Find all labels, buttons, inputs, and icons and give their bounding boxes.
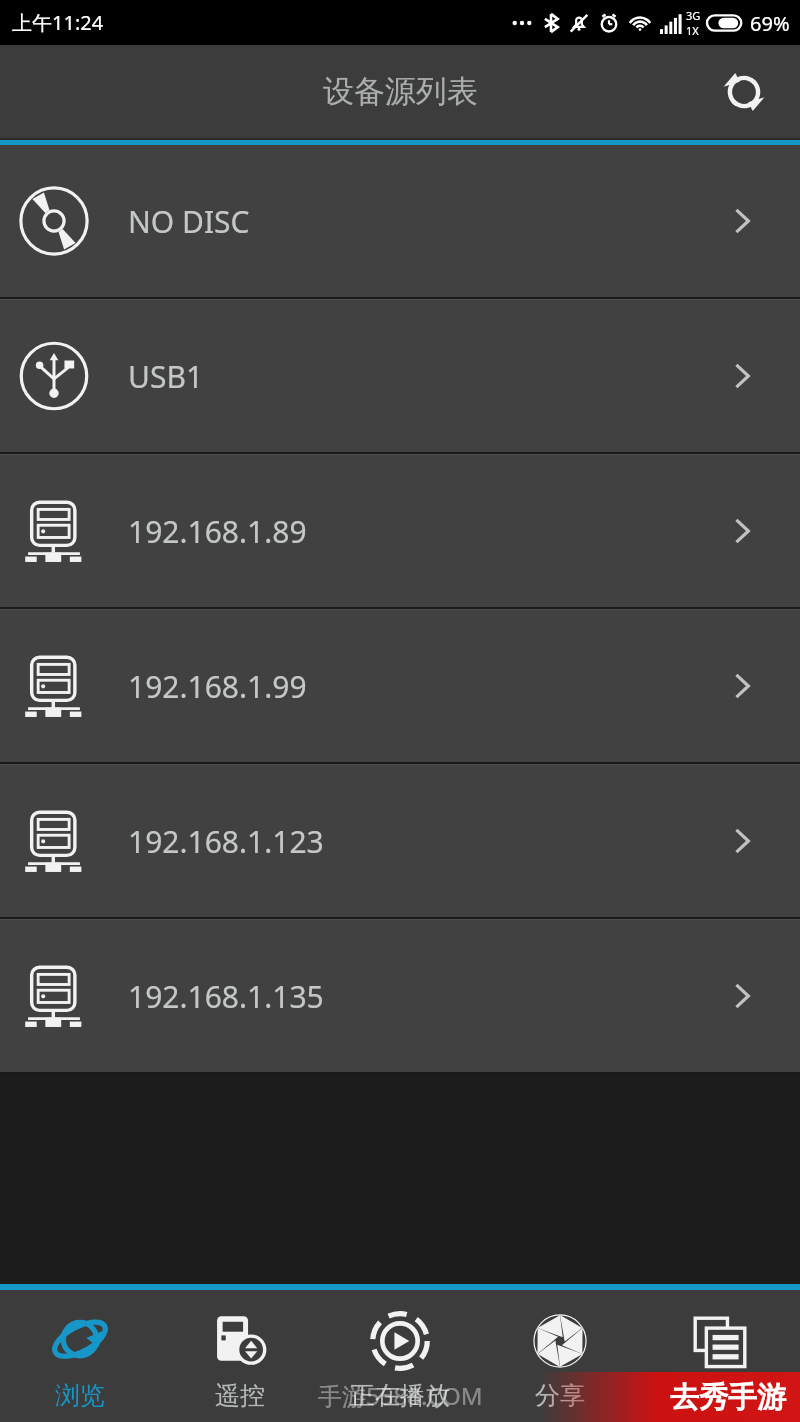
staticText: 69% xyxy=(750,10,790,37)
staticText: 去秀手游 xyxy=(670,1379,786,1416)
button[interactable]: 192.168.1.135 xyxy=(0,920,800,1072)
button[interactable]: USB1 xyxy=(0,300,800,452)
staticText: 192.168.1.135 xyxy=(128,976,324,1017)
button[interactable]: 192.168.1.89 xyxy=(0,455,800,607)
staticText: 3G xyxy=(686,8,701,23)
staticText: NO DISC xyxy=(128,201,250,242)
button[interactable]: 浏览 xyxy=(0,1290,160,1422)
button[interactable]: NO DISC xyxy=(0,145,800,297)
button[interactable]: 分享 xyxy=(480,1290,640,1422)
staticText: 设备源列表 xyxy=(323,72,478,111)
staticText: 上午11:24 xyxy=(12,9,104,36)
button[interactable]: 正在播放 xyxy=(320,1290,480,1422)
staticText: 192.168.1.123 xyxy=(128,821,324,862)
staticText: 192.168.1.99 xyxy=(128,666,307,707)
staticText: 1X xyxy=(686,23,699,38)
button[interactable]: Playlist xyxy=(640,1290,800,1422)
staticText: 分享 xyxy=(535,1380,585,1411)
staticText: USB1 xyxy=(128,356,204,397)
button[interactable]: 192.168.1.123 xyxy=(0,765,800,917)
button[interactable]: 遥控 xyxy=(160,1290,320,1422)
button[interactable]: 192.168.1.99 xyxy=(0,610,800,762)
staticText: 浏览 xyxy=(55,1380,105,1411)
staticText: 手游5588.COM xyxy=(318,1379,483,1412)
staticText: 正在播放 xyxy=(350,1380,450,1411)
staticText: 192.168.1.89 xyxy=(128,511,307,552)
button[interactable]: Refresh xyxy=(716,64,772,120)
staticText: 遥控 xyxy=(215,1380,265,1411)
